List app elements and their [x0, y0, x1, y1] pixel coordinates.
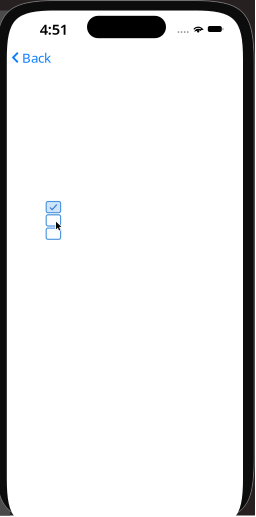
button[interactable]: Back — [7, 44, 58, 71]
staticText: Back — [22, 49, 51, 66]
staticText: 4:51 — [40, 19, 68, 39]
button[interactable]: Unselected option — [46, 215, 61, 226]
button[interactable]: Unselected option — [46, 228, 61, 239]
button[interactable]: Selected option — [46, 201, 61, 213]
